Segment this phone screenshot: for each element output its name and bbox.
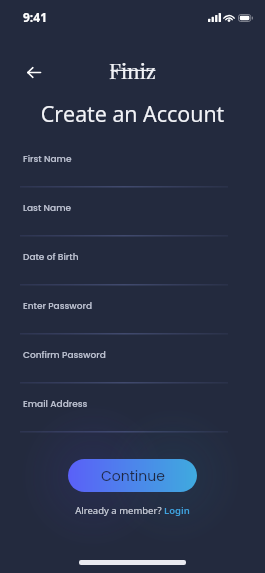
button[interactable]: First Name (0, 145, 265, 186)
button[interactable]: Email Address (0, 390, 265, 431)
staticText: Email Address (23, 398, 88, 411)
button[interactable]: Date of Birth (0, 243, 265, 284)
staticText: Create an Account (0, 99, 265, 128)
staticText: Enter Password (23, 300, 93, 313)
button[interactable]: Continue (68, 459, 197, 492)
staticText: Already a member? Login (75, 504, 190, 517)
button[interactable]: Back (20, 58, 48, 86)
button[interactable]: Already a member? Login (71, 502, 194, 519)
button[interactable]: Last Name (0, 194, 265, 235)
staticText: Confirm Password (23, 349, 106, 362)
button[interactable]: Enter Password (0, 292, 265, 333)
button[interactable]: Confirm Password (0, 341, 265, 382)
staticText: Last Name (23, 202, 72, 215)
staticText: Finiz (109, 56, 156, 84)
staticText: Continue (101, 466, 165, 486)
staticText: Date of Birth (23, 251, 79, 264)
staticText: 9:41 (23, 9, 48, 25)
staticText: First Name (23, 153, 72, 166)
